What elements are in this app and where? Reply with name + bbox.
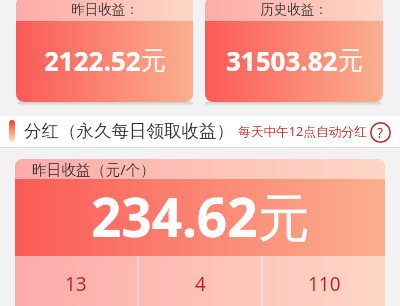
staticText: 4 xyxy=(195,271,206,297)
button[interactable]: 110 xyxy=(263,256,385,306)
staticText: 110 xyxy=(308,271,341,297)
staticText: 234.62 xyxy=(91,180,258,252)
staticText: 元 xyxy=(258,186,310,252)
button[interactable]: 昨日收益（元/个） xyxy=(15,159,385,306)
staticText: ? xyxy=(377,123,384,142)
staticText: 昨日收益（元/个） xyxy=(32,159,155,179)
staticText: 13 xyxy=(65,271,87,297)
button[interactable]: 4 xyxy=(139,256,261,306)
button[interactable]: 13 xyxy=(15,256,137,306)
button[interactable]: 每天中午12点自动分红 帮助 xyxy=(238,122,391,143)
staticText: 历史收益： xyxy=(260,1,328,18)
button[interactable]: 历史收益： xyxy=(205,0,383,102)
staticText: 31503.82 xyxy=(226,43,338,78)
staticText: 元 xyxy=(141,45,166,76)
staticText: 每天中午12点自动分红 xyxy=(238,122,367,139)
button[interactable]: 昨日收益： xyxy=(16,0,193,102)
staticText: 元 xyxy=(338,45,363,76)
button[interactable]: 分红（永久每日领取收益） xyxy=(24,120,234,142)
staticText: 昨日收益： xyxy=(71,1,139,18)
staticText: 2122.52 xyxy=(44,43,141,78)
